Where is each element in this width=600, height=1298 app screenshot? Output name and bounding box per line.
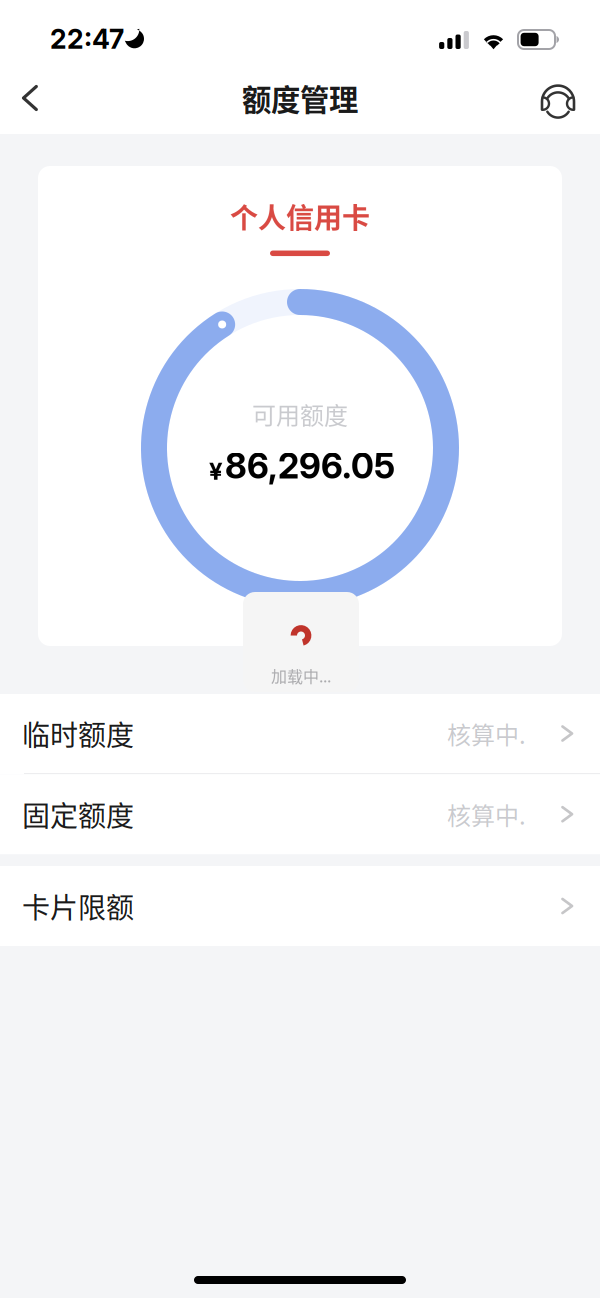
staticText: 额度管理 [242,77,358,119]
staticText: 固定额度 [22,794,134,834]
button[interactable]: Customer service [530,67,590,129]
staticText: 86,296.05 [225,445,395,487]
staticText: 核算中. [447,716,526,751]
staticText: 个人信用卡 [230,196,370,236]
staticText: 可用额度 [252,397,348,431]
button[interactable]: 卡片限额 [0,866,600,946]
button[interactable]: 固定额度 [0,774,600,854]
staticText: 卡片限额 [22,886,134,926]
staticText: 22:47 [50,23,124,55]
button[interactable]: 个人信用卡 [190,196,410,256]
staticText: 加载中... [271,664,331,687]
button[interactable]: Back [2,67,58,129]
staticText: 临时额度 [22,713,134,754]
staticText: 核算中. [447,797,526,832]
button[interactable]: 临时额度 [0,694,600,773]
staticText: ¥ [209,456,223,485]
